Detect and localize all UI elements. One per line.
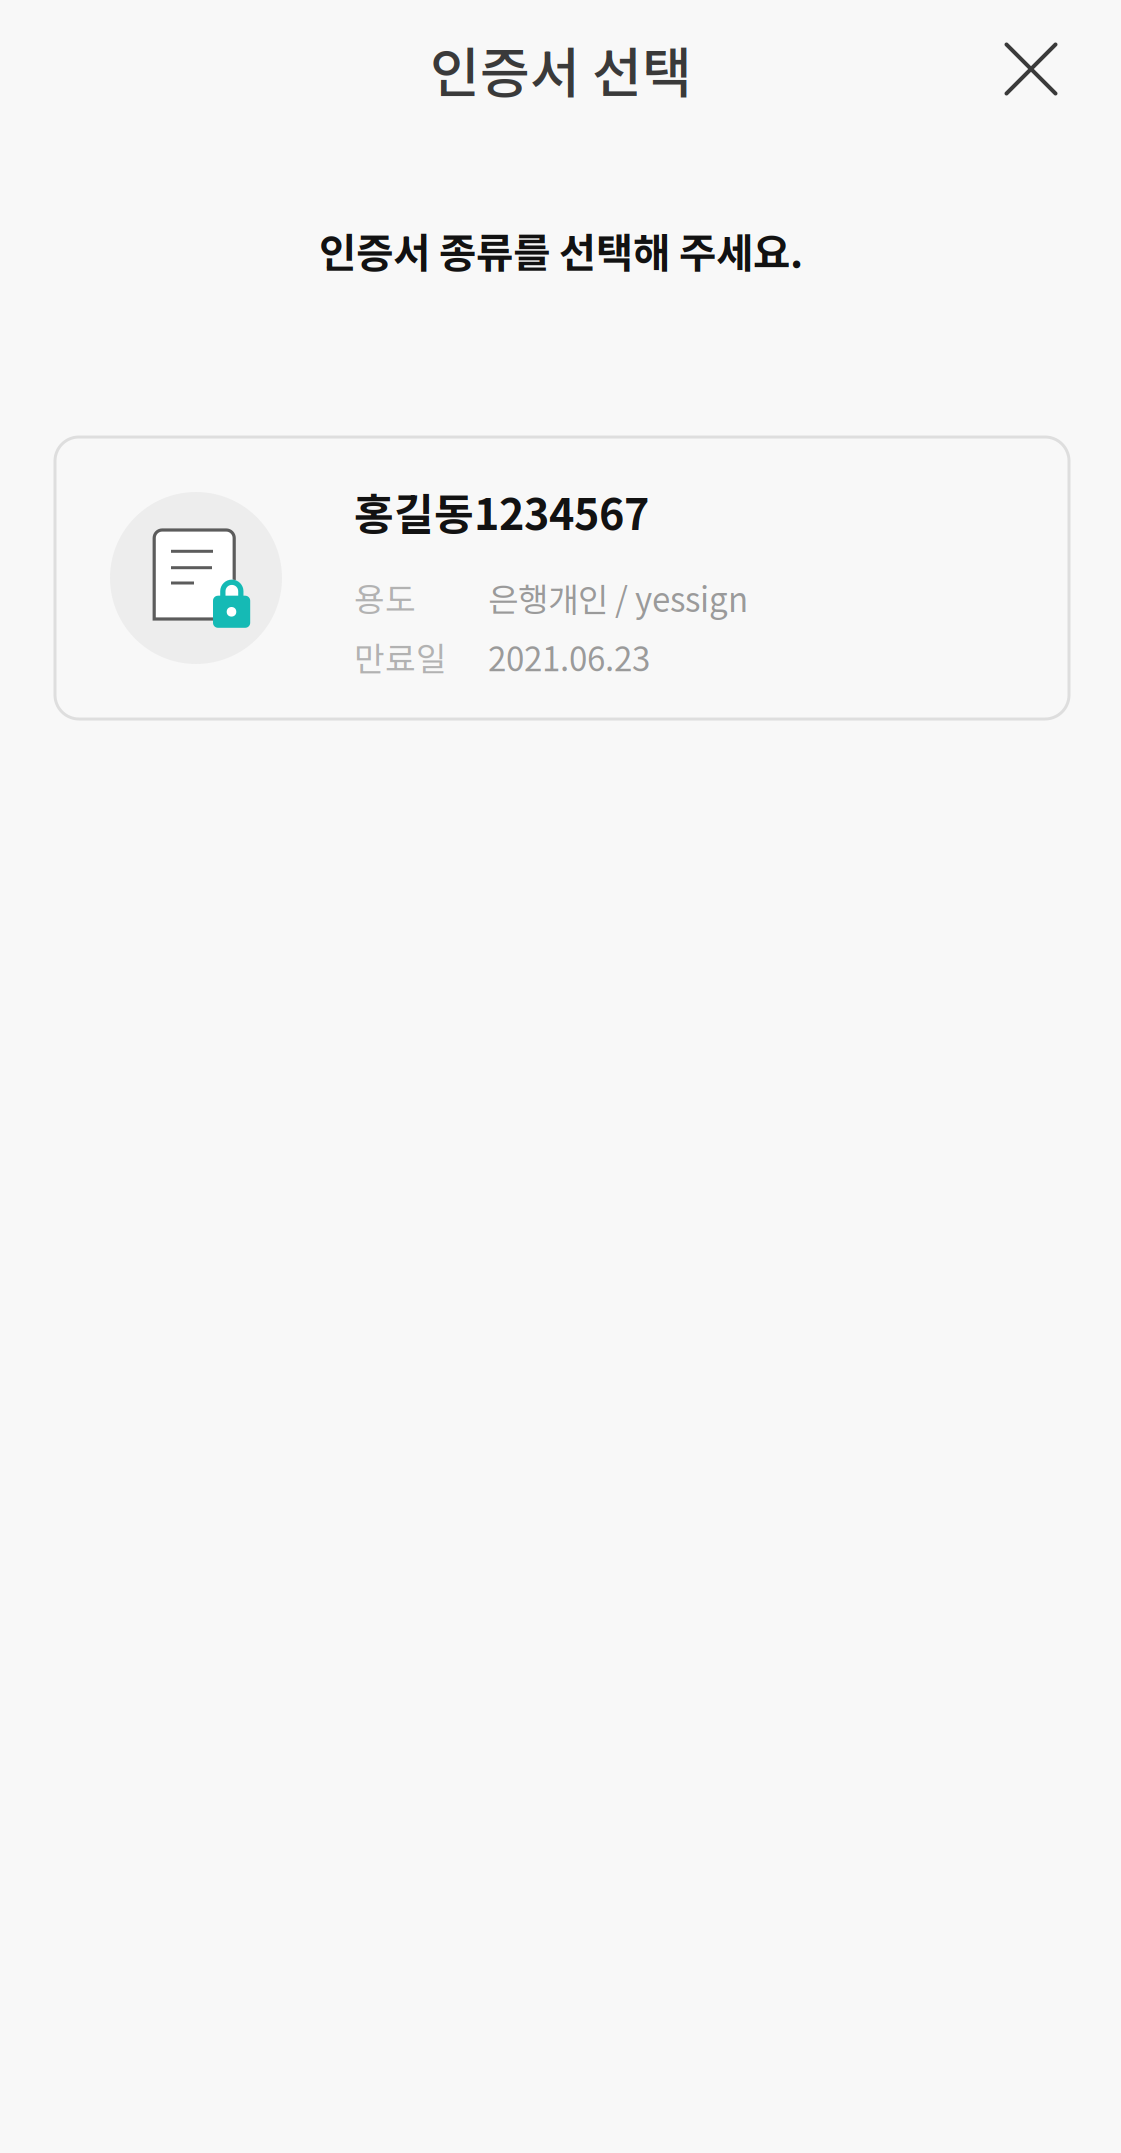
staticText: 홍길동1234567: [354, 480, 649, 542]
staticText: 은행개인 / yessign: [488, 574, 748, 622]
button[interactable]: 홍길동1234567: [55, 437, 1069, 719]
staticText: 인증서 종류를 선택해 주세요.: [319, 221, 803, 279]
staticText: 용도: [354, 573, 416, 622]
staticText: 2021.06.23: [488, 633, 650, 681]
button[interactable]: Close: [971, 9, 1091, 129]
staticText: 만료일: [354, 633, 447, 681]
staticText: 인증서 선택: [430, 30, 692, 108]
